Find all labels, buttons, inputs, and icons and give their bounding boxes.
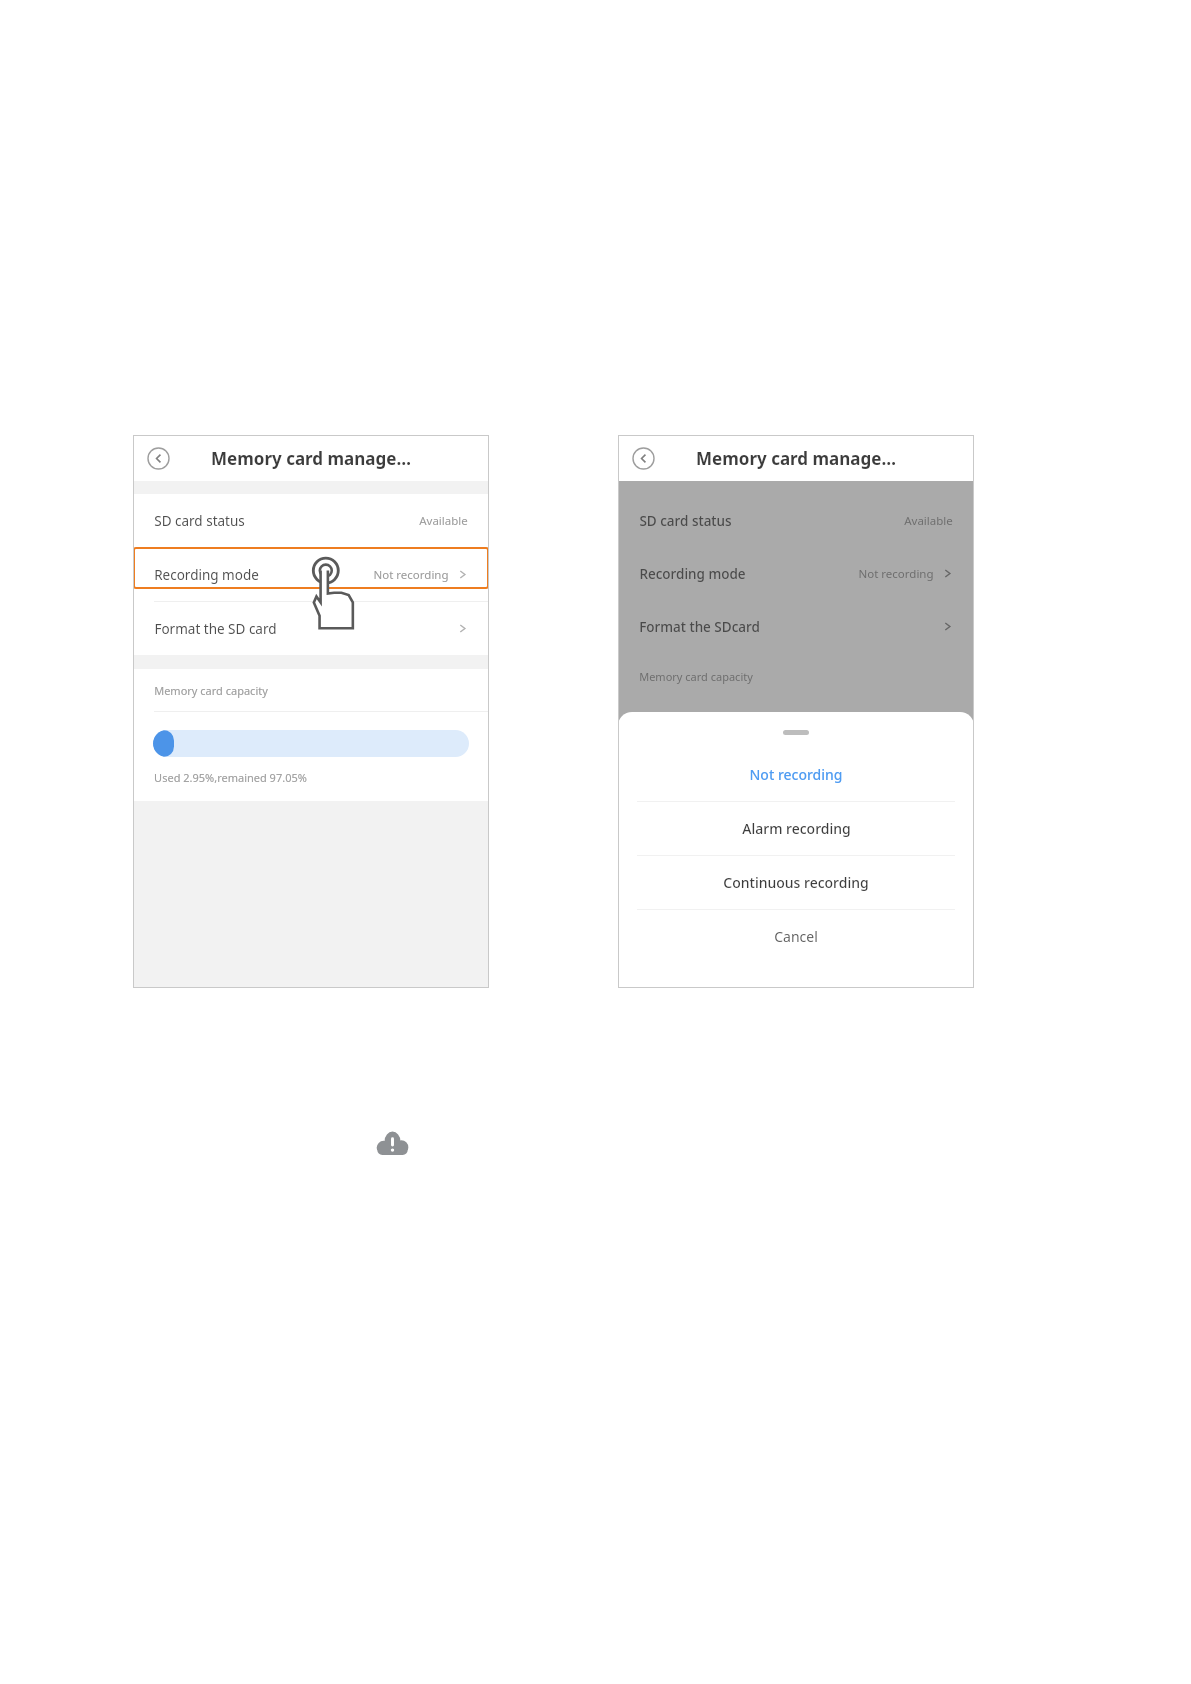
button[interactable]: Alarm recording — [618, 802, 974, 855]
button[interactable]: Recording mode — [618, 547, 974, 600]
staticText: Continuous recording — [723, 873, 869, 892]
button[interactable]: SD card status — [133, 494, 489, 548]
button[interactable]: Recording mode — [133, 548, 489, 602]
staticText: Memory card capacity — [154, 683, 268, 698]
button[interactable]: SD card status — [618, 494, 974, 547]
staticText: Available — [419, 513, 468, 529]
staticText: Not recording — [858, 566, 934, 582]
button[interactable]: Format the SDcard — [618, 600, 974, 653]
button[interactable]: Back — [630, 445, 656, 471]
staticText: Not recording — [373, 567, 449, 583]
button[interactable]: Format the SD card — [133, 602, 489, 655]
staticText: Format the SD card — [154, 620, 277, 638]
staticText: Recording mode — [154, 566, 259, 584]
staticText: Memory card capacity — [639, 669, 753, 684]
button[interactable]: Back — [145, 445, 171, 471]
staticText: SD card status — [639, 512, 732, 530]
staticText: Format the SDcard — [639, 618, 760, 636]
staticText: Recording mode — [639, 565, 746, 583]
other: Cloud alert — [376, 1127, 409, 1160]
button[interactable]: Continuous recording — [618, 856, 974, 909]
staticText: SD card status — [154, 512, 245, 530]
staticText: Not recording — [749, 765, 843, 784]
staticText: Cancel — [774, 927, 818, 946]
staticText: Alarm recording — [742, 819, 851, 838]
staticText: Available — [904, 513, 953, 529]
staticText: Memory card manage… — [696, 447, 896, 470]
button[interactable]: Cancel — [618, 910, 974, 963]
staticText: Memory card manage… — [211, 447, 411, 470]
button[interactable]: Not recording — [618, 748, 974, 801]
staticText: Used 2.95%,remained 97.05% — [154, 770, 307, 785]
